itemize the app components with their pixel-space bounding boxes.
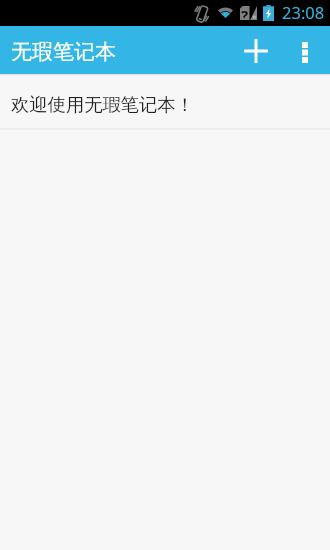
button[interactable]: New note [231, 26, 280, 74]
button[interactable]: More options [280, 26, 330, 74]
button[interactable]: 欢迎使用无瑕笔记本！ [0, 74, 330, 130]
staticText: 23:08 [282, 1, 325, 23]
staticText: ? [241, 5, 249, 19]
staticText: 欢迎使用无瑕笔记本！ [11, 93, 194, 116]
staticText: 无瑕笔记本 [11, 39, 116, 65]
